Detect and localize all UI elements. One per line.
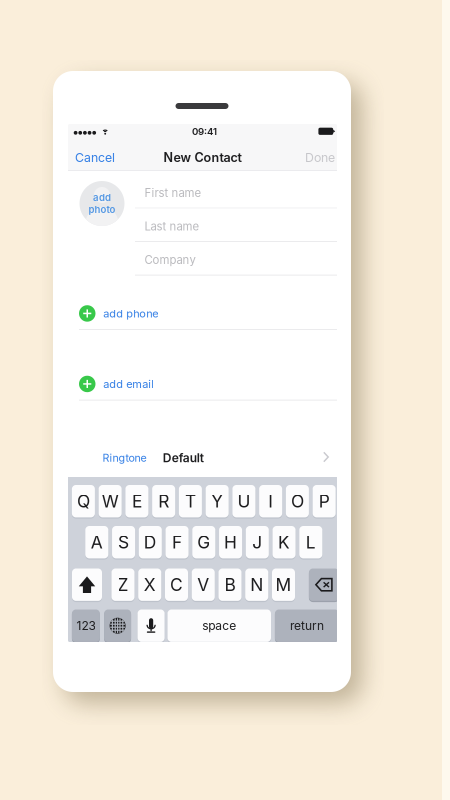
button[interactable]: Q (72, 485, 95, 519)
staticText: J (252, 532, 262, 553)
button[interactable]: E (125, 485, 148, 519)
button[interactable]: V (192, 568, 215, 602)
staticText: B (224, 574, 235, 595)
staticText: A (91, 532, 103, 553)
button[interactable]: Ringtone (68, 440, 337, 474)
button[interactable]: X (138, 568, 161, 602)
button[interactable]: M (272, 568, 295, 602)
button[interactable]: add phone (79, 296, 337, 330)
button[interactable]: O (286, 485, 309, 519)
staticText: 09:41 (192, 126, 217, 137)
staticText: O (291, 491, 304, 512)
button[interactable]: return (275, 609, 339, 643)
button[interactable]: Last name (135, 208, 337, 242)
staticText: L (306, 532, 316, 553)
button[interactable]: Delete (309, 568, 339, 602)
staticText: add phone (103, 307, 158, 320)
button[interactable]: R (152, 485, 175, 519)
button[interactable]: F (166, 526, 189, 560)
button[interactable]: Z (111, 568, 134, 602)
staticText: add email (103, 377, 154, 391)
staticText: Cancel (75, 150, 115, 165)
staticText: K (278, 532, 290, 553)
staticText: R (158, 491, 169, 512)
staticText: First name (144, 186, 201, 200)
button[interactable]: P (313, 485, 336, 519)
staticText: Q (77, 491, 90, 512)
staticText: P (319, 491, 330, 512)
staticText: E (132, 491, 142, 512)
button[interactable]: S (112, 526, 135, 560)
staticText: S (118, 532, 129, 553)
staticText: M (275, 574, 291, 595)
staticText: 123 (76, 618, 95, 633)
staticText: Company (144, 253, 195, 267)
staticText: G (197, 532, 210, 553)
staticText: D (144, 532, 157, 553)
staticText: U (237, 491, 250, 512)
staticText: photo (88, 204, 115, 215)
button[interactable]: Company (135, 242, 337, 275)
button[interactable]: B (218, 568, 241, 602)
button[interactable]: Shift (72, 568, 102, 602)
staticText: Last name (144, 219, 199, 233)
button[interactable]: Cancel (75, 144, 127, 171)
button[interactable]: W (99, 485, 122, 519)
staticText: I (268, 491, 273, 512)
button[interactable]: space (167, 609, 271, 643)
staticText: Z (117, 574, 128, 595)
button[interactable]: G (192, 526, 215, 560)
button[interactable]: First name (135, 175, 337, 208)
staticText: X (144, 574, 156, 595)
button[interactable]: N (245, 568, 268, 602)
staticText: N (250, 574, 263, 595)
button[interactable]: A (85, 526, 108, 560)
staticText: W (102, 491, 119, 512)
staticText: Ringtone (102, 451, 146, 464)
staticText: V (197, 574, 209, 595)
staticText: C (170, 574, 183, 595)
staticText: Y (211, 491, 223, 512)
staticText: add (93, 192, 111, 203)
button[interactable]: Add photo (79, 181, 124, 226)
button[interactable]: T (179, 485, 202, 519)
staticText: Done (305, 150, 335, 165)
button[interactable]: Done (285, 144, 335, 171)
button[interactable]: L (299, 526, 322, 560)
button[interactable]: D (139, 526, 162, 560)
staticText: F (172, 532, 182, 553)
button[interactable]: H (219, 526, 242, 560)
staticText: New Contact (163, 150, 241, 165)
button[interactable]: C (165, 568, 188, 602)
staticText: H (224, 532, 237, 553)
staticText: T (185, 491, 196, 512)
button[interactable]: 123 (72, 609, 100, 643)
button[interactable]: Y (206, 485, 229, 519)
staticText: return (290, 618, 324, 633)
button[interactable]: add email (79, 366, 337, 400)
button[interactable]: I (259, 485, 282, 519)
button[interactable]: Next keyboard (104, 609, 131, 643)
staticText: space (202, 618, 236, 633)
button[interactable]: Dictation (138, 609, 165, 643)
button[interactable]: U (232, 485, 255, 519)
button[interactable]: J (246, 526, 269, 560)
staticText: Default (163, 450, 204, 465)
button[interactable]: K (273, 526, 296, 560)
